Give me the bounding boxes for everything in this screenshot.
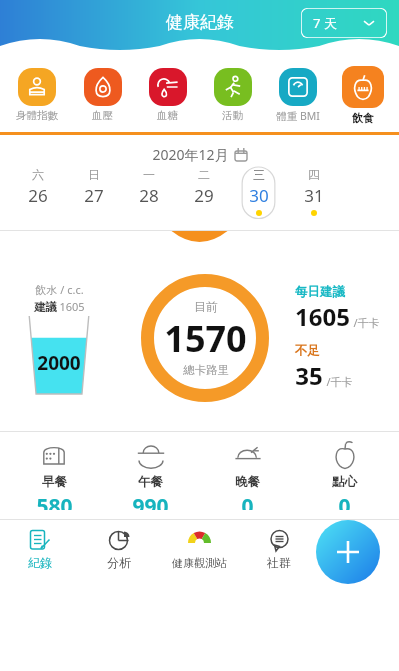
staticText: 血糖: [157, 109, 178, 122]
staticText: 午餐: [138, 474, 163, 490]
staticText: 飲水 / c.c.: [35, 282, 84, 297]
button[interactable]: 六: [10, 167, 66, 223]
staticText: 二: [198, 167, 210, 182]
button[interactable]: 血糖: [135, 68, 200, 122]
staticText: 1570: [164, 314, 247, 363]
staticText: 健康紀錄: [166, 12, 234, 33]
staticText: 29: [194, 184, 214, 207]
staticText: 社群: [267, 555, 291, 570]
staticText: 健康觀測站: [172, 556, 227, 570]
staticText: /千卡: [326, 374, 353, 389]
button[interactable]: 血壓: [70, 68, 135, 122]
staticText: 血壓: [92, 109, 113, 122]
button[interactable]: 三: [231, 167, 286, 223]
staticText: 每日建議: [295, 284, 345, 300]
button[interactable]: 會員: [319, 528, 399, 570]
button[interactable]: 紀錄: [0, 528, 79, 570]
button[interactable]: 一: [121, 167, 176, 223]
staticText: 體重 BMI: [276, 109, 320, 123]
staticText: 六: [32, 167, 44, 182]
staticText: 身體指數: [16, 109, 58, 122]
staticText: 7 天: [313, 14, 337, 32]
staticText: 0: [241, 492, 254, 510]
button[interactable]: 健康觀測站: [159, 529, 239, 570]
button[interactable]: 早餐: [6, 440, 102, 510]
button[interactable]: 二: [176, 167, 231, 223]
staticText: 不足: [295, 343, 320, 359]
staticText: 28: [139, 184, 159, 207]
staticText: 27: [84, 184, 104, 207]
button[interactable]: 身體指數: [4, 68, 70, 122]
staticText: 一: [143, 167, 155, 182]
staticText: 35: [295, 359, 323, 392]
staticText: 分析: [107, 555, 131, 570]
staticText: 總卡路里: [183, 363, 229, 377]
staticText: 目前: [194, 299, 218, 314]
staticText: 30: [249, 184, 269, 207]
staticText: 2020年12月: [152, 145, 229, 164]
staticText: 早餐: [42, 474, 67, 490]
button[interactable]: 飲食: [330, 66, 395, 125]
staticText: 990: [132, 492, 169, 510]
staticText: 活動: [222, 109, 243, 122]
button[interactable]: 體重 BMI: [265, 68, 330, 123]
staticText: 2000: [37, 350, 81, 376]
button[interactable]: Add record: [316, 520, 380, 584]
button[interactable]: 目前: [141, 274, 269, 402]
staticText: 飲食: [352, 111, 374, 125]
staticText: 580: [36, 492, 73, 510]
staticText: 會員: [347, 555, 371, 570]
button[interactable]: 2000: [28, 316, 90, 394]
staticText: 建議: [34, 300, 57, 314]
staticText: 1605: [295, 300, 350, 333]
staticText: /千卡: [353, 315, 380, 330]
button[interactable]: 晚餐: [199, 440, 296, 510]
staticText: 三: [253, 167, 265, 182]
button[interactable]: 點心: [296, 440, 393, 510]
button[interactable]: 活動: [200, 68, 265, 122]
button[interactable]: 日: [66, 167, 121, 223]
staticText: 晚餐: [235, 474, 260, 490]
staticText: 26: [28, 184, 48, 207]
staticText: 日: [88, 167, 100, 182]
staticText: 31: [304, 184, 324, 207]
button[interactable]: 四: [286, 167, 341, 223]
staticText: 四: [308, 167, 320, 182]
button[interactable]: 7 天: [301, 8, 387, 38]
staticText: 1605: [59, 299, 85, 314]
button[interactable]: 分析: [79, 528, 159, 570]
staticText: 0: [338, 492, 351, 510]
button[interactable]: 社群: [239, 528, 319, 570]
staticText: 點心: [332, 474, 357, 490]
staticText: 紀錄: [28, 555, 52, 570]
button[interactable]: 午餐: [102, 440, 199, 510]
